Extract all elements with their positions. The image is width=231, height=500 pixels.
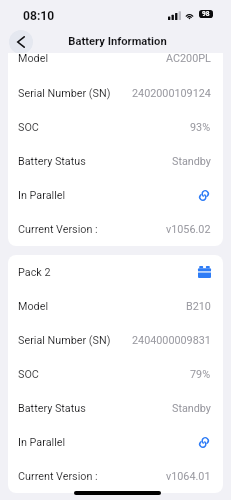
staticText: Standby — [172, 401, 211, 415]
staticText: Pack 2 — [18, 265, 51, 279]
staticText: Serial Number (SN) — [18, 333, 111, 347]
staticText: Current Version : — [18, 469, 98, 483]
staticText: 93% — [190, 120, 211, 134]
staticText: 2402000109124 — [132, 86, 211, 100]
staticText: 08:10 — [23, 9, 55, 23]
button[interactable]: Battery pack — [197, 265, 211, 279]
button[interactable]: In Parallel — [8, 425, 223, 459]
staticText: AC200PL — [166, 53, 211, 65]
staticText: Current Version : — [18, 222, 98, 236]
button[interactable]: Current Version : — [8, 459, 223, 493]
staticText: Standby — [172, 154, 211, 168]
button[interactable]: Pack 2 — [8, 255, 223, 289]
staticText: In Parallel — [18, 435, 66, 449]
staticText: v1064.01 — [166, 469, 211, 483]
button[interactable]: In Parallel link — [197, 188, 211, 202]
staticText: Model — [18, 53, 49, 65]
staticText: 98 — [202, 10, 210, 18]
staticText: 2404000009831 — [132, 333, 211, 347]
staticText: 79% — [190, 367, 211, 381]
button[interactable]: In Parallel link — [197, 435, 211, 449]
button[interactable]: SOC — [8, 357, 223, 391]
staticText: SOC — [18, 120, 39, 134]
button[interactable]: Serial Number (SN) — [8, 323, 223, 357]
button[interactable]: Model — [8, 53, 223, 75]
button[interactable]: SOC — [8, 110, 223, 144]
staticText: Battery Status — [18, 401, 86, 415]
button[interactable]: Model — [8, 289, 223, 323]
staticText: Battery Information — [68, 35, 167, 48]
button[interactable]: Current Version : — [8, 212, 223, 246]
button[interactable]: Back — [9, 30, 33, 54]
staticText: SOC — [18, 367, 39, 381]
button[interactable]: Battery Status — [8, 391, 223, 425]
staticText: v1056.02 — [166, 222, 211, 236]
staticText: Battery Status — [18, 154, 86, 168]
staticText: Serial Number (SN) — [18, 86, 111, 100]
button[interactable]: Battery Status — [8, 144, 223, 178]
staticText: Model — [18, 299, 49, 313]
staticText: In Parallel — [18, 188, 66, 202]
button[interactable]: Serial Number (SN) — [8, 76, 223, 110]
button[interactable]: In Parallel — [8, 178, 223, 212]
staticText: B210 — [186, 299, 211, 313]
